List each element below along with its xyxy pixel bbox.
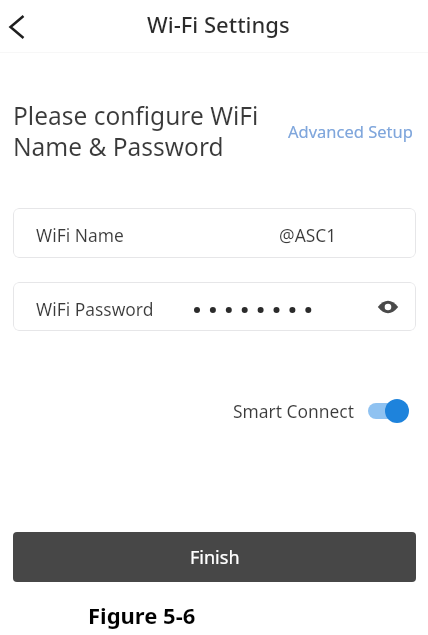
staticText: WiFi Password: [36, 297, 154, 321]
staticText: Finish: [190, 545, 240, 570]
staticText: WiFi Name: [36, 223, 124, 247]
button[interactable]: WiFi Password: [13, 282, 416, 331]
staticText: @ASC1: [279, 223, 337, 247]
button[interactable]: Finish: [13, 532, 416, 582]
button[interactable]: Advanced Setup: [285, 118, 416, 144]
button[interactable]: WiFi Name: [13, 208, 416, 258]
button[interactable]: Smart Connect toggle: [368, 398, 409, 423]
staticText: Advanced Setup: [288, 120, 413, 142]
button[interactable]: Show password: [371, 290, 405, 324]
staticText: Wi-Fi Settings: [147, 9, 290, 39]
button[interactable]: Back: [0, 5, 44, 49]
staticText: Smart Connect: [233, 399, 354, 423]
staticText: Please configure WiFi Name & Password: [13, 99, 259, 164]
staticText: Figure 5-6: [88, 600, 196, 630]
